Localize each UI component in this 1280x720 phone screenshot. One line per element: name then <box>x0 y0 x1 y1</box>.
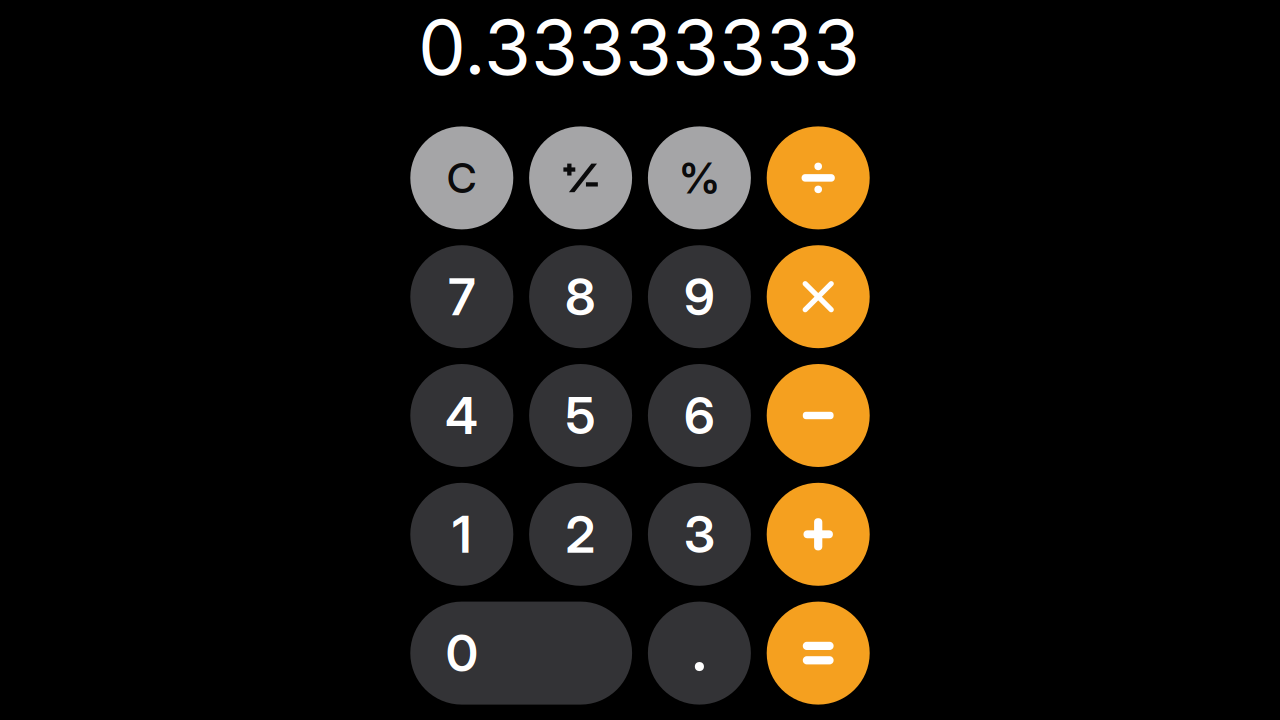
button[interactable]: 7 <box>410 245 513 348</box>
staticText: 0.33333333 <box>418 1 860 93</box>
button[interactable]: 9 <box>648 245 751 348</box>
button[interactable]: Decimal point <box>648 602 751 705</box>
staticText: % <box>678 152 721 204</box>
button[interactable]: Plus minus <box>529 126 632 229</box>
button[interactable]: 2 <box>529 483 632 586</box>
staticText: 1 <box>452 504 471 565</box>
staticText: 5 <box>566 385 596 446</box>
button[interactable]: Add <box>767 483 870 586</box>
staticText: 2 <box>566 504 596 565</box>
button[interactable]: Divide <box>767 126 870 229</box>
button[interactable]: Equals <box>767 602 870 705</box>
staticText: 3 <box>684 504 715 565</box>
button[interactable]: 6 <box>648 364 751 467</box>
button[interactable]: 4 <box>410 364 513 467</box>
button[interactable]: Clear <box>410 126 513 229</box>
button[interactable]: 5 <box>529 364 632 467</box>
button[interactable]: 3 <box>648 483 751 586</box>
button[interactable]: 1 <box>410 483 513 586</box>
staticText: 6 <box>684 385 715 446</box>
button[interactable]: Subtract <box>767 364 870 467</box>
staticText: 0 <box>446 622 478 684</box>
staticText: 9 <box>684 266 715 327</box>
staticText: 4 <box>445 385 478 446</box>
staticText: C <box>447 153 477 203</box>
staticText: 7 <box>448 266 475 327</box>
button[interactable]: Zero <box>410 602 632 705</box>
button[interactable]: 8 <box>529 245 632 348</box>
button[interactable]: Percent <box>648 126 751 229</box>
button[interactable]: Multiply <box>767 245 870 348</box>
staticText: 8 <box>565 266 596 327</box>
